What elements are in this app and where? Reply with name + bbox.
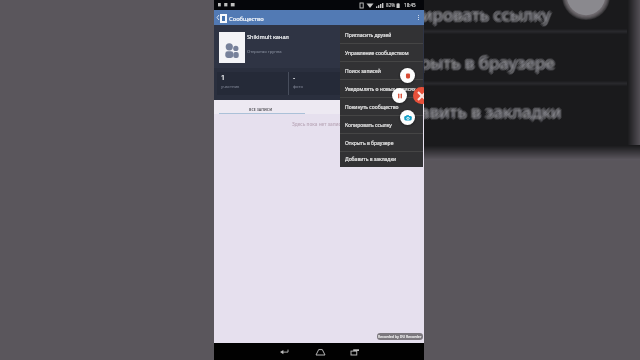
staticText: авить в закладки: [420, 102, 562, 125]
button[interactable]: Покинуть сообщество: [340, 98, 423, 116]
staticText: ировать ссылку: [423, 4, 552, 27]
button[interactable]: 1: [217, 72, 288, 95]
staticText: рыть в браузере: [419, 52, 554, 75]
button[interactable]: Pause recording: [392, 88, 407, 103]
staticText: Управление сообществом: [345, 50, 409, 57]
button[interactable]: Take screenshot: [400, 110, 415, 125]
staticText: Открыть в браузере: [345, 140, 394, 147]
staticText: ировать ссылку: [421, 2, 550, 25]
staticText: фото: [293, 84, 303, 90]
staticText: ировать ссылку: [422, 3, 551, 26]
button[interactable]: Recorded by DU Recorder: [377, 333, 423, 340]
button[interactable]: Back: [214, 10, 221, 25]
button[interactable]: Stop recording: [400, 68, 415, 83]
staticText: рыть в браузере: [420, 51, 555, 74]
button[interactable]: Recent apps: [343, 343, 367, 360]
staticText: Копировать ссылку: [345, 122, 392, 129]
staticText: Recorded by DU Recorder: [378, 334, 422, 339]
staticText: рыть в браузере: [419, 50, 554, 73]
staticText: 82%: [386, 2, 396, 8]
staticText: 18:45: [404, 2, 416, 8]
staticText: рыть в браузере: [421, 50, 556, 73]
staticText: авить в закладки: [422, 100, 564, 123]
staticText: ировать ссылку: [423, 2, 552, 25]
button[interactable]: Сообщество: [229, 15, 264, 23]
staticText: -: [293, 73, 296, 83]
staticText: Покинуть сообщество: [345, 104, 399, 111]
staticText: ировать ссылку: [424, 3, 553, 26]
staticText: авить в закладки: [419, 99, 561, 122]
staticText: авить в закладки: [421, 101, 563, 124]
button[interactable]: Открыть в браузере: [340, 134, 423, 152]
staticText: 1: [221, 73, 226, 83]
button[interactable]: Поиск записей: [340, 62, 423, 80]
staticText: авить в закладки: [421, 101, 563, 124]
staticText: рыть в браузере: [419, 50, 554, 73]
staticText: ировать ссылку: [422, 5, 551, 28]
staticText: рыть в браузере: [418, 51, 553, 74]
button[interactable]: Back: [272, 343, 296, 360]
staticText: ВСЕ ЗАПИСИ: [249, 107, 273, 112]
staticText: авить в закладки: [419, 99, 561, 122]
staticText: рыть в браузере: [420, 49, 555, 72]
staticText: ировать ссылку: [421, 2, 550, 25]
button[interactable]: ВСЕ ЗАПИСИ: [214, 100, 309, 114]
staticText: рыть в браузере: [420, 53, 555, 76]
staticText: Добавить в закладки: [345, 156, 397, 163]
staticText: Открытая группа: [247, 49, 282, 55]
staticText: ировать ссылку: [420, 3, 549, 26]
staticText: рыть в браузере: [421, 52, 556, 75]
button[interactable]: More options: [412, 10, 424, 25]
staticText: Поиск записей: [345, 68, 381, 75]
staticText: Shikimult канал: [247, 33, 289, 41]
button[interactable]: Close: [413, 87, 424, 104]
staticText: авить в закладки: [419, 101, 561, 124]
button[interactable]: Community icon: [220, 14, 227, 23]
staticText: авить в закладки: [420, 98, 562, 121]
staticText: ировать ссылку: [421, 4, 550, 27]
button[interactable]: Добавить в закладки: [340, 152, 423, 167]
button[interactable]: -: [289, 72, 422, 95]
staticText: авить в закладки: [420, 100, 562, 123]
staticText: авить в закладки: [421, 99, 563, 122]
staticText: авить в закладки: [418, 100, 560, 123]
staticText: ировать ссылку: [423, 4, 552, 27]
staticText: Здесь пока нет записей: [292, 121, 347, 128]
staticText: участник: [221, 84, 240, 90]
staticText: ЗАПИСИ: [349, 107, 365, 112]
button[interactable]: Home: [308, 343, 332, 360]
staticText: ировать ссылку: [422, 1, 551, 24]
button[interactable]: Уведомлять о новых записях: [340, 80, 423, 98]
staticText: рыть в браузере: [421, 52, 556, 75]
button[interactable]: Управление сообществом: [340, 44, 423, 62]
button[interactable]: Копировать ссылку: [340, 116, 423, 134]
staticText: Пригласить друзей: [345, 32, 392, 39]
button[interactable]: Shikimult канал: [214, 25, 424, 68]
button[interactable]: ЗАПИСИ: [309, 100, 404, 114]
button[interactable]: Пригласить друзей: [340, 26, 423, 44]
staticText: рыть в браузере: [422, 51, 557, 74]
staticText: Уведомлять о новых записях: [345, 86, 416, 93]
